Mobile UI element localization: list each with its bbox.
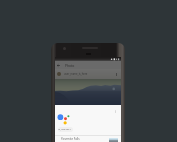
button[interactable]: Yosemite Falls	[55, 135, 121, 142]
staticText: Photo	[65, 63, 75, 67]
staticText: Hi, how can I help?	[58, 128, 73, 131]
button[interactable]: Back	[56, 63, 61, 68]
staticText: user_name_is_here	[64, 72, 88, 76]
staticText: Yosemite Falls	[61, 137, 80, 141]
button[interactable]: user_name_is_here	[55, 69, 121, 79]
button[interactable]: More options	[114, 72, 119, 77]
